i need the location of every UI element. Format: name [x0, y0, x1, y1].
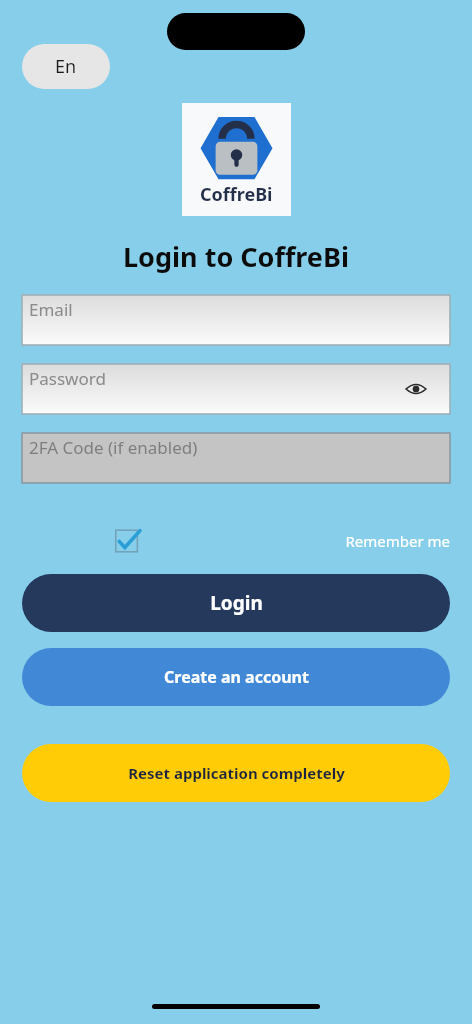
button[interactable]: Password	[22, 364, 450, 414]
staticText: En	[55, 54, 77, 79]
staticText: Remember me	[145, 531, 450, 551]
button[interactable]: Show password	[404, 377, 428, 401]
button[interactable]: Login	[22, 574, 450, 632]
button[interactable]: Reset application completely	[22, 744, 450, 802]
button[interactable]: Email	[22, 295, 450, 345]
button[interactable]: En	[22, 44, 110, 89]
staticText: Create an account	[164, 666, 309, 688]
staticText: Reset application completely	[128, 763, 345, 783]
staticText: CoffreBi	[200, 182, 273, 207]
staticText: Login	[210, 590, 263, 616]
staticText: Login to CoffreBi	[0, 238, 472, 275]
button[interactable]: 2FA Code (if enabled)	[22, 433, 450, 483]
button[interactable]: Create an account	[22, 648, 450, 706]
staticText: Password	[29, 367, 106, 390]
staticText: Email	[29, 298, 73, 321]
button[interactable]: Remember me	[22, 526, 450, 556]
staticText: 2FA Code (if enabled)	[29, 436, 198, 459]
